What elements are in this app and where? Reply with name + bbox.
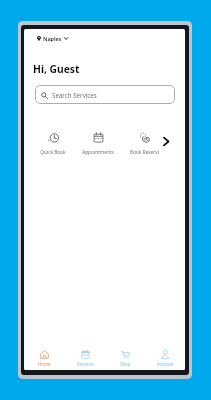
- staticText: Services: [77, 361, 94, 367]
- staticText: Hi, Guest: [33, 62, 80, 76]
- button[interactable]: Appointments: [76, 132, 120, 160]
- staticText: Quick Book: [40, 149, 66, 155]
- staticText: Appointments: [82, 149, 114, 155]
- button[interactable]: Book Reservi: [122, 132, 166, 160]
- staticText: Book Reservi: [130, 149, 159, 155]
- staticText: Home: [38, 361, 51, 367]
- button[interactable]: Account: [145, 350, 185, 367]
- staticText: Search Services: [52, 91, 97, 99]
- staticText: Account: [157, 361, 174, 367]
- button[interactable]: Quick Book: [31, 132, 75, 160]
- button[interactable]: Services: [65, 350, 105, 367]
- staticText: Naples: [43, 35, 62, 42]
- button[interactable]: Shop: [105, 350, 145, 367]
- button[interactable]: Search Services: [35, 85, 175, 104]
- button[interactable]: Home: [24, 350, 65, 367]
- button[interactable]: Naples: [37, 35, 68, 42]
- staticText: Shop: [120, 361, 131, 367]
- button[interactable]: Show more quick actions: [160, 135, 172, 147]
